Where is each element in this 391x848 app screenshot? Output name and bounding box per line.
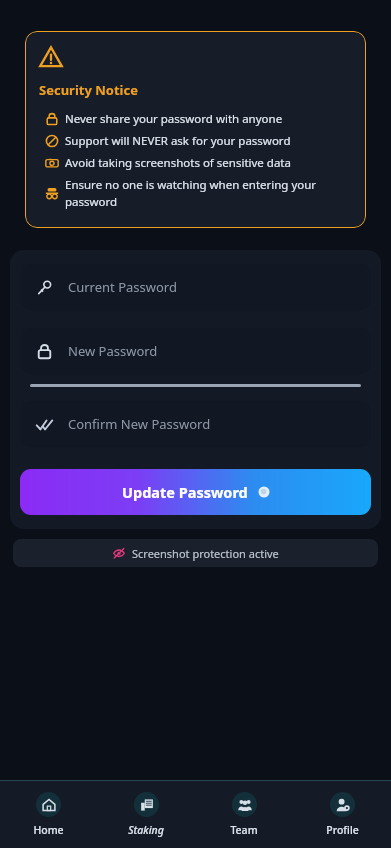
button[interactable]: Screenshot blocked [13,539,378,567]
staticText: New Password [68,342,158,360]
button[interactable]: New Password [20,328,371,374]
other: Team [238,798,252,812]
staticText: Update Password [122,482,248,502]
other: Staking [140,798,154,812]
staticText: Ensure no one is watching when entering … [65,177,352,209]
staticText: Home [33,823,64,837]
button[interactable]: Team [195,781,293,848]
button[interactable]: Home [0,781,97,848]
staticText: Avoid taking screenshots of sensitive da… [65,155,291,171]
staticText: Profile [326,823,359,837]
staticText: Current Password [68,278,177,296]
staticText: Staking [128,823,164,837]
staticText: Team [230,823,258,837]
other: Warning [39,45,63,69]
button[interactable]: Update Password [20,469,371,515]
button[interactable]: Confirm New Password [20,401,371,447]
staticText: Support will NEVER ask for your password [65,133,291,149]
staticText: Screenshot protection active [132,546,279,561]
button[interactable]: Current Password [20,264,371,310]
button[interactable]: Staking [97,781,195,848]
staticText: Never share your password with anyone [65,111,283,127]
button[interactable]: Profile [293,781,391,848]
other: Screenshot blocked [113,547,125,559]
staticText: Confirm New Password [68,415,211,433]
staticText: Security Notice [39,81,138,99]
other: Profile [336,798,350,812]
other: Secure [258,486,270,498]
other: Home [42,798,56,812]
